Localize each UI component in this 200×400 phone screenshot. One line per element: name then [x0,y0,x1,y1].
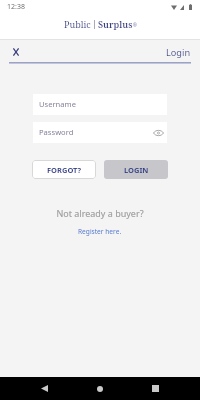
button[interactable]: Username [33,94,167,115]
button[interactable]: LOGIN [104,160,168,179]
staticText: Login [166,46,191,59]
staticText: ® [133,22,137,28]
button[interactable]: Password [33,122,167,143]
staticText: FORGOT? [47,165,82,175]
staticText: Username [39,99,76,109]
staticText: Not already a buyer? [56,207,144,219]
staticText: Surplus [98,18,133,30]
button[interactable]: Register here. [75,226,125,237]
staticText: Password [39,127,74,137]
button[interactable]: Show password [151,126,165,140]
button[interactable]: Back [33,377,55,400]
staticText: Register here. [78,227,122,236]
staticText: 12:38 [7,2,25,12]
button[interactable]: Close [6,44,26,60]
button[interactable]: Recents [144,377,166,400]
button[interactable]: Home [89,377,111,400]
button[interactable]: Login [163,44,193,60]
staticText: Public [64,18,91,30]
button[interactable]: FORGOT? [32,160,96,179]
staticText: LOGIN [124,165,149,175]
